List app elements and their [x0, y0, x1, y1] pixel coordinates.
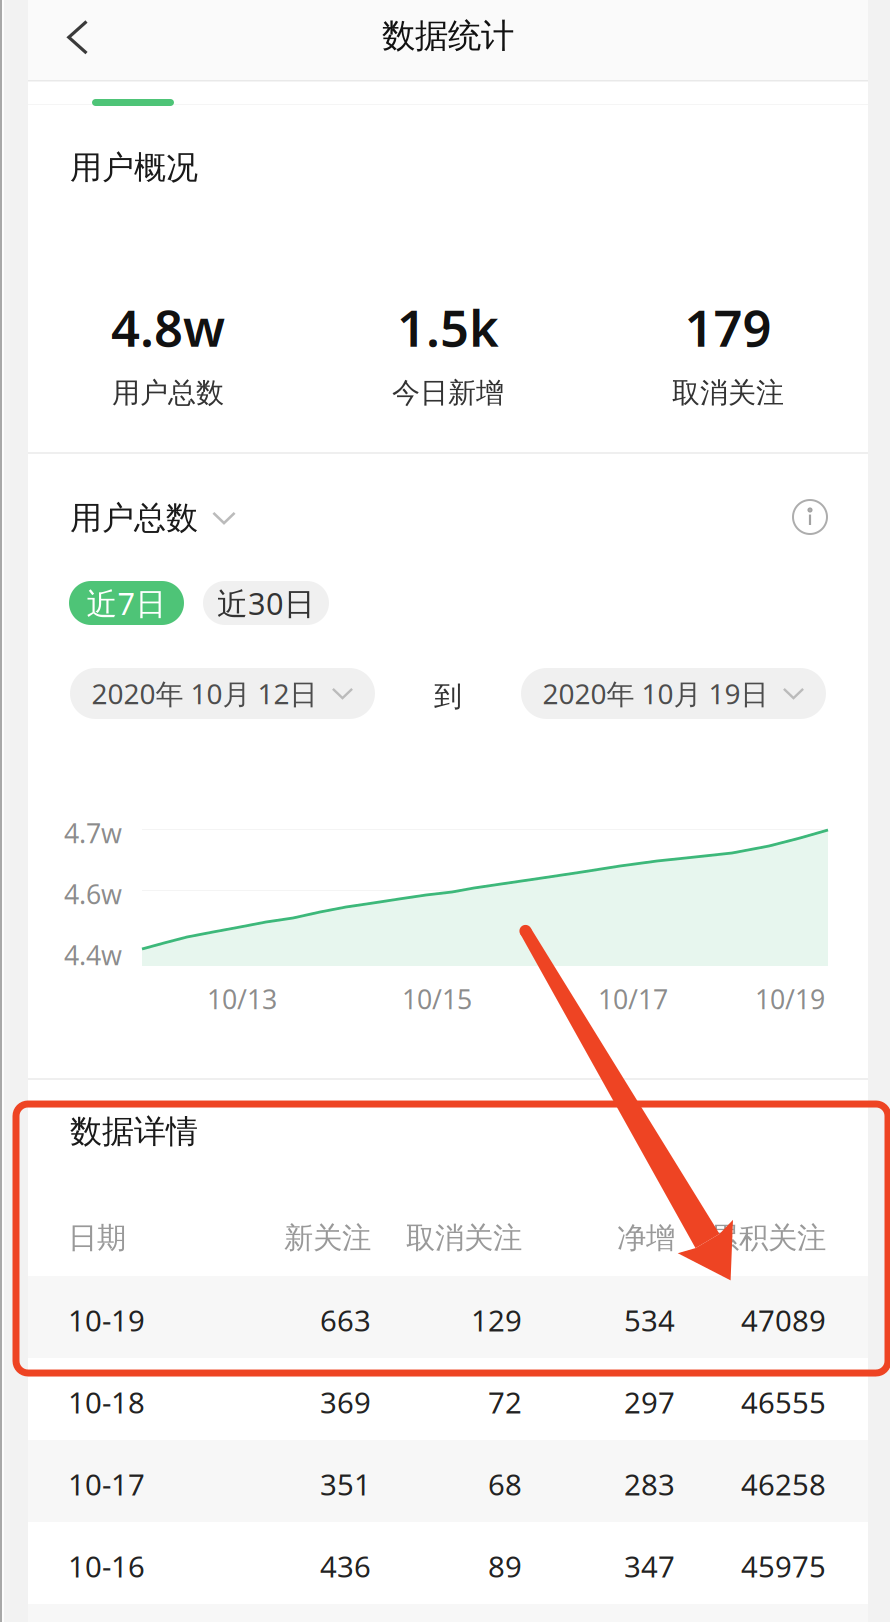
staticText: 日期 [68, 1220, 126, 1256]
button[interactable]: 近7日 [69, 581, 184, 625]
button[interactable]: 2020年 10月 19日 [521, 668, 826, 719]
staticText: 到 [434, 679, 462, 714]
staticText: 297 [624, 1382, 675, 1421]
staticText: 用户总数 [112, 376, 224, 410]
staticText: 179 [684, 293, 771, 361]
staticText: 10/15 [402, 981, 472, 1017]
staticText: 72 [488, 1382, 522, 1421]
staticText: 47089 [741, 1300, 826, 1339]
staticText: 数据详情 [70, 1112, 198, 1151]
staticText: 累积关注 [710, 1220, 826, 1256]
button[interactable]: 10-17 [28, 1440, 868, 1522]
button[interactable]: 近30日 [203, 581, 329, 625]
staticText: 46555 [741, 1382, 826, 1421]
staticText: 534 [624, 1300, 675, 1339]
staticText: 净增 [617, 1220, 675, 1256]
staticText: 10-18 [68, 1382, 145, 1421]
staticText: 近30日 [217, 583, 315, 623]
staticText: 283 [624, 1464, 675, 1503]
staticText: 10/17 [598, 981, 668, 1017]
staticText: 4.7w [64, 815, 122, 851]
staticText: 2020年 10月 19日 [542, 675, 768, 712]
staticText: 89 [488, 1546, 522, 1585]
staticText: 663 [320, 1300, 371, 1339]
staticText: 10/19 [755, 981, 825, 1017]
staticText: 1.5k [397, 293, 499, 361]
staticText: 4.4w [64, 937, 122, 973]
staticText: 436 [320, 1546, 371, 1585]
button[interactable]: 10-16 [28, 1522, 868, 1604]
button[interactable]: 10-18 [28, 1358, 868, 1440]
staticText: 347 [624, 1546, 675, 1585]
staticText: 129 [471, 1300, 522, 1339]
button[interactable]: 10-19 [28, 1276, 868, 1358]
staticText: 数据统计 [382, 15, 514, 56]
staticText: 4.6w [64, 876, 122, 912]
staticText: 10-17 [68, 1464, 145, 1503]
staticText: 今日新增 [392, 376, 504, 410]
staticText: 10-19 [68, 1300, 145, 1339]
staticText: 取消关注 [672, 376, 784, 410]
staticText: 68 [488, 1464, 522, 1503]
staticText: 用户总数 [70, 498, 198, 538]
staticText: 用户概况 [70, 148, 198, 187]
staticText: 351 [320, 1464, 371, 1503]
staticText: 10-16 [68, 1546, 145, 1585]
button[interactable]: Info [793, 500, 827, 534]
staticText: 46258 [741, 1464, 826, 1503]
staticText: 近7日 [86, 583, 166, 623]
staticText: 2020年 10月 12日 [91, 675, 317, 712]
staticText: 取消关注 [406, 1220, 522, 1256]
button[interactable]: 2020年 10月 12日 [70, 668, 375, 719]
staticText: 4.8w [111, 293, 225, 361]
staticText: 369 [320, 1382, 371, 1421]
button[interactable]: Back [40, 8, 116, 70]
staticText: 45975 [741, 1546, 826, 1585]
button[interactable]: 用户总数 [70, 500, 370, 536]
staticText: 新关注 [284, 1220, 371, 1256]
staticText: 10/13 [207, 981, 277, 1017]
